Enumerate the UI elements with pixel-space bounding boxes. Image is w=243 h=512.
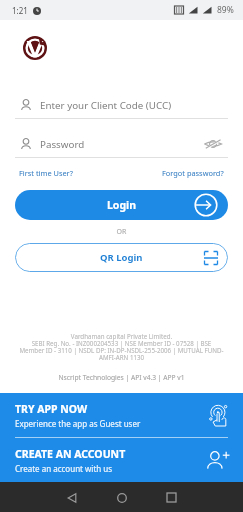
staticText: Forgot password?	[162, 168, 224, 178]
staticText: Nscript Technologies | API v4.3 | APP v1	[10, 373, 233, 382]
staticText: QR Login	[100, 251, 143, 264]
staticText: Vardhaman capital Private Limited. SEBI …	[10, 332, 233, 362]
button[interactable]: QR Login	[15, 243, 228, 272]
staticText: OR	[0, 227, 243, 237]
button[interactable]: Login	[15, 190, 228, 220]
button[interactable]: Toggle password visibility	[204, 139, 222, 149]
staticText: First time User?	[19, 168, 73, 178]
other: Login	[194, 193, 218, 217]
other: Create an account	[206, 448, 230, 472]
button[interactable]: First time User?	[19, 166, 73, 180]
other: Try app now	[208, 404, 230, 426]
staticText: Login	[107, 198, 137, 212]
other: Scan QR code	[204, 251, 218, 265]
staticText: Create an account with us	[15, 463, 113, 474]
button[interactable]: Home	[107, 483, 136, 512]
button[interactable]: Forgot password?	[162, 166, 224, 180]
button[interactable]: TRY APP NOW	[0, 393, 243, 437]
staticText: Password	[40, 138, 204, 151]
button[interactable]: Recent apps	[157, 483, 186, 512]
staticText: Enter your Client Code (UCC)	[40, 99, 228, 112]
staticText: 1:21	[12, 5, 28, 16]
button[interactable]: Back	[57, 483, 86, 512]
staticText: CREATE AN ACCOUNT	[15, 447, 126, 461]
button[interactable]: CREATE AN ACCOUNT	[0, 438, 243, 482]
staticText: Experience the app as Guest user	[15, 418, 141, 429]
staticText: TRY APP NOW	[15, 402, 88, 416]
staticText: 89%	[217, 4, 234, 16]
